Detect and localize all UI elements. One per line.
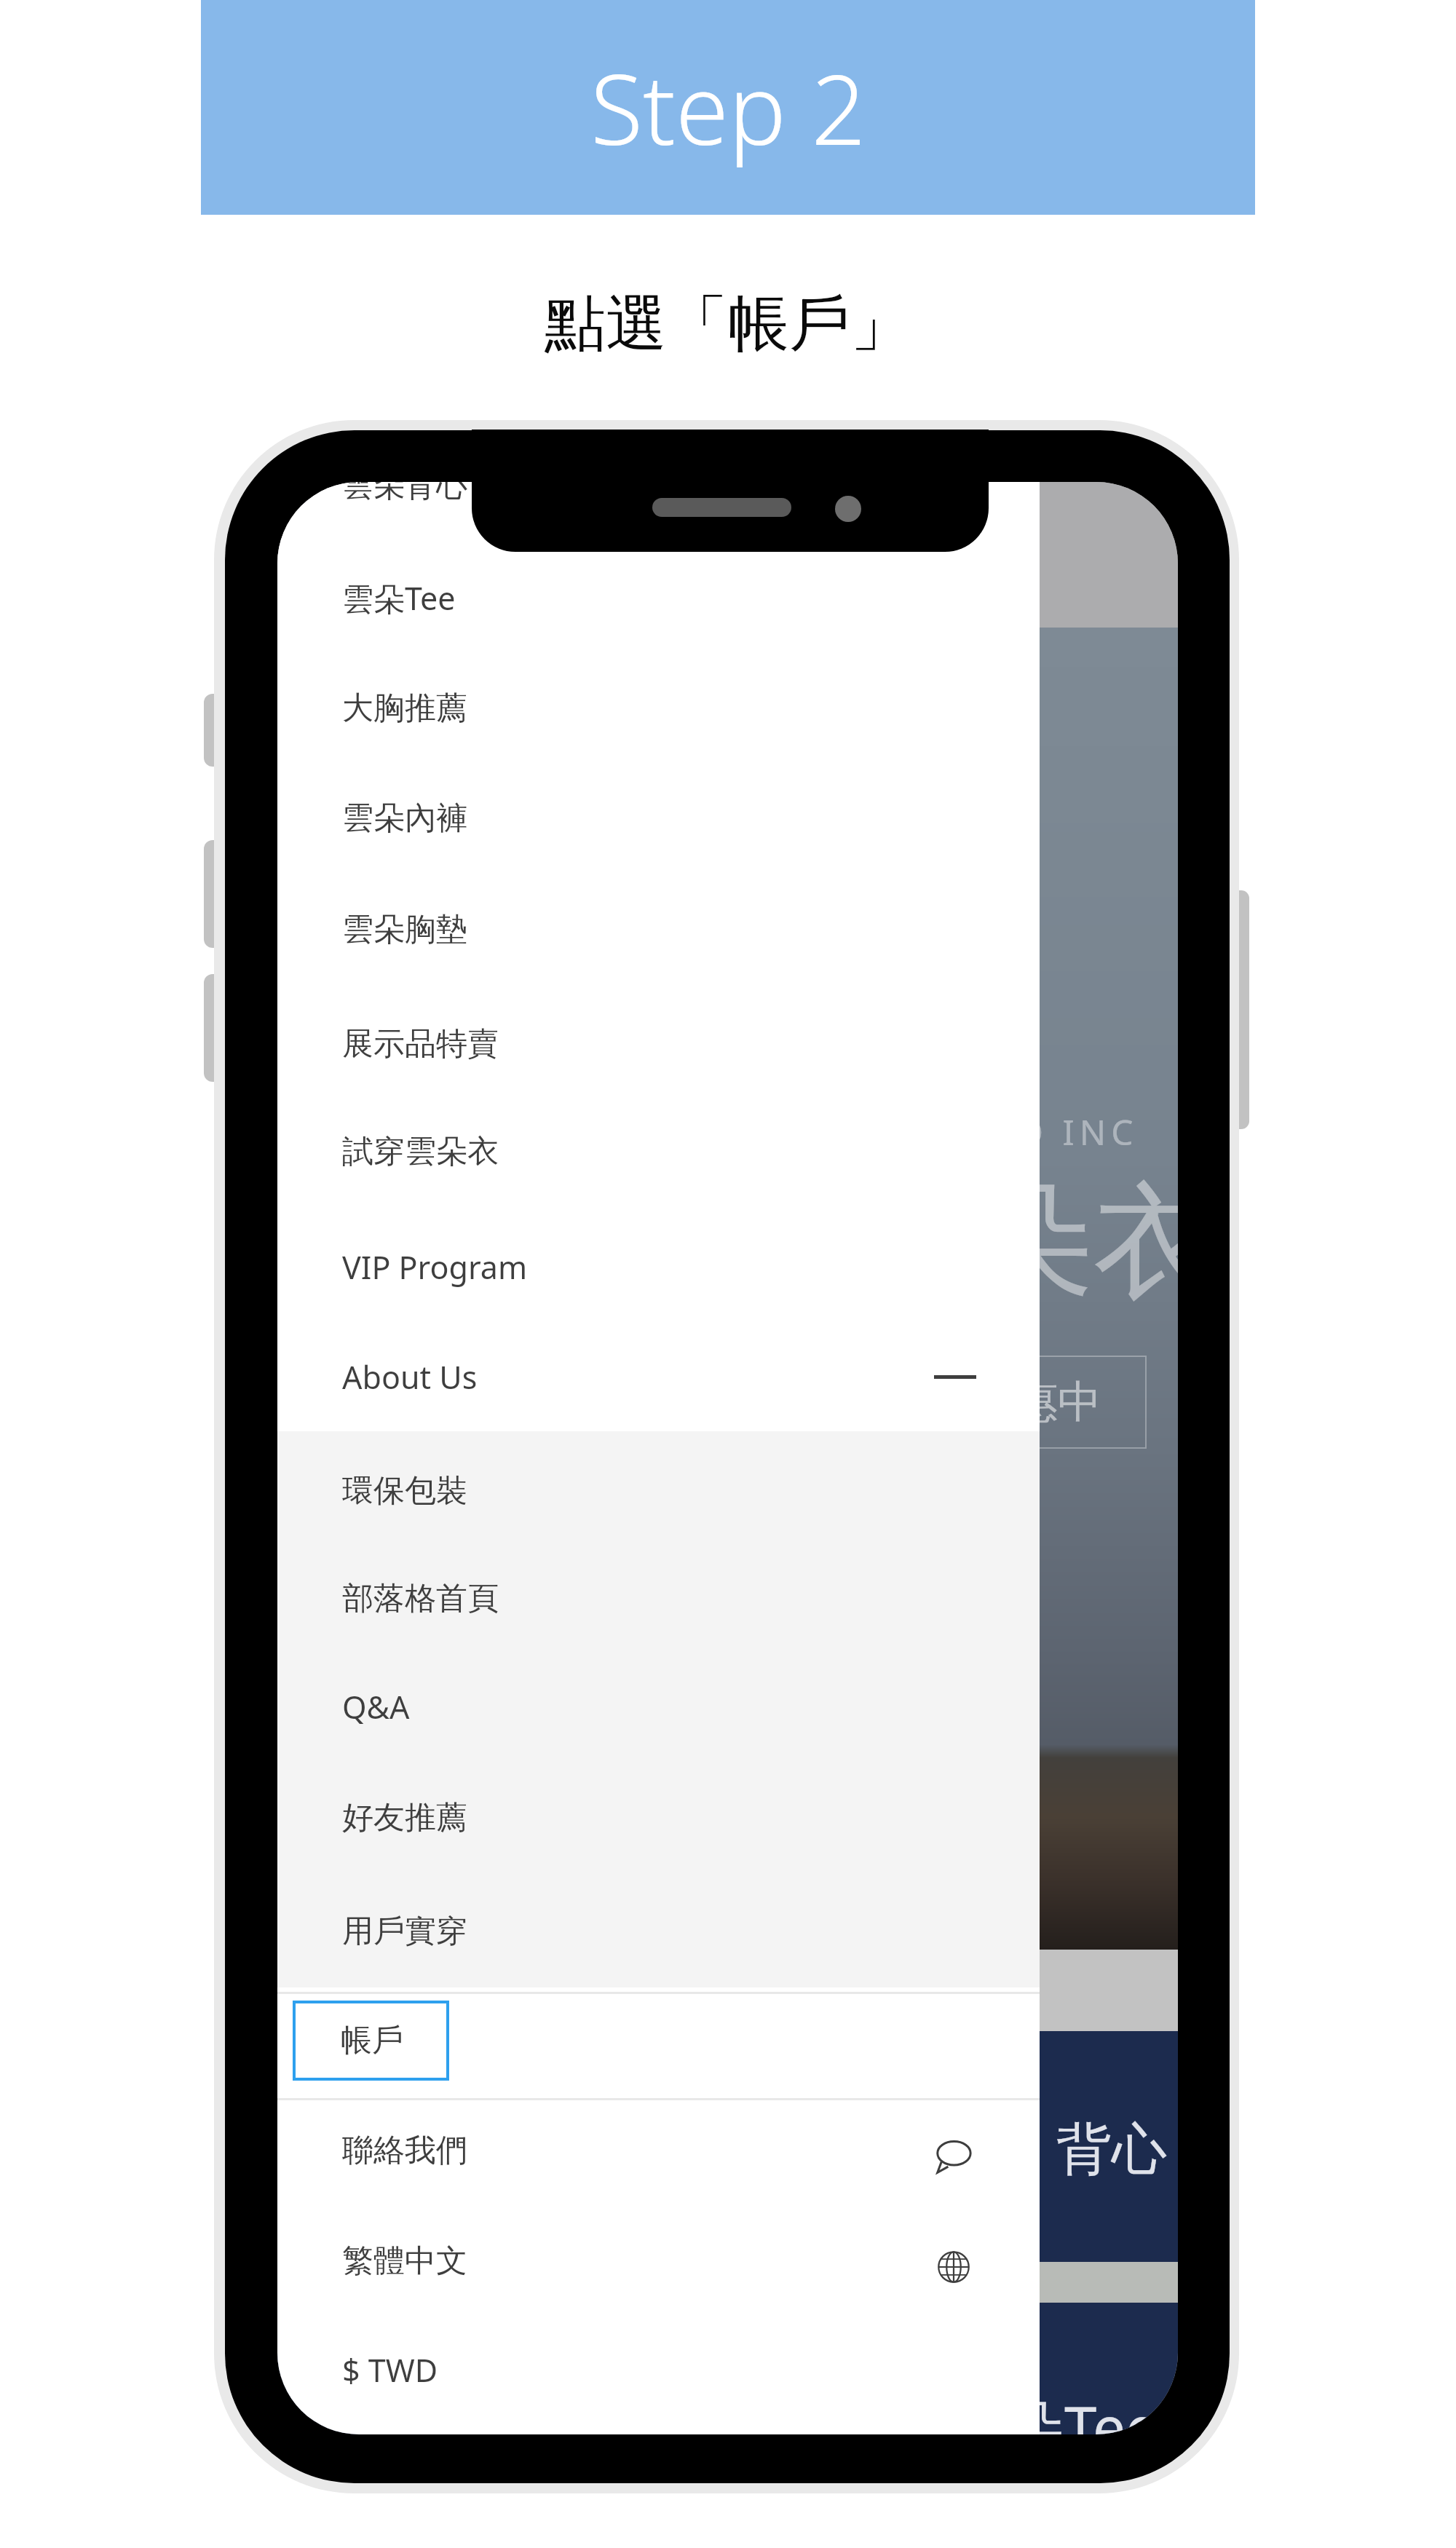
button[interactable]: 環保包裝 bbox=[342, 1464, 1104, 1518]
staticText: 聯絡我們 bbox=[342, 2131, 467, 2170]
button[interactable]: 雲朵背心 bbox=[342, 482, 1104, 513]
button[interactable]: 聯絡我們 bbox=[342, 2124, 1104, 2177]
staticText: 點選「帳戶」 bbox=[545, 285, 911, 363]
staticText: 惠中 bbox=[1014, 1374, 1101, 1430]
button[interactable]: 帳戶 bbox=[293, 2001, 449, 2081]
button[interactable]: 雲朵Tee bbox=[342, 571, 1104, 625]
button[interactable]: 雲朵胸墊 bbox=[342, 903, 1104, 957]
button[interactable]: VIP Program bbox=[342, 1240, 1104, 1294]
staticText: 用戶實穿 bbox=[342, 1912, 467, 1951]
staticText: 部落格首頁 bbox=[342, 1579, 499, 1618]
staticText: 繁體中文 bbox=[342, 2242, 467, 2281]
staticText: 朵Tee bbox=[1006, 2386, 1159, 2434]
staticText: D INC bbox=[1018, 1108, 1139, 1155]
staticText: 環保包裝 bbox=[342, 1471, 467, 1511]
staticText: $ TWD bbox=[342, 2349, 438, 2391]
staticText: VIP Program bbox=[342, 1246, 528, 1289]
staticText: Q&A bbox=[342, 1685, 410, 1728]
button[interactable]: 繁體中文 bbox=[342, 2234, 1104, 2288]
staticText: 好友推薦 bbox=[342, 1798, 467, 1837]
staticText: Step 2 bbox=[590, 42, 866, 173]
button[interactable]: 惠中 bbox=[968, 1356, 1147, 1449]
staticText: About Us bbox=[342, 1356, 478, 1398]
button[interactable]: 試穿雲朵衣 bbox=[342, 1125, 1104, 1179]
staticText: 雲朵內褲 bbox=[342, 799, 467, 838]
staticText: 朵衣 bbox=[968, 1165, 1178, 1323]
staticText: 雲朵胸墊 bbox=[342, 910, 467, 949]
staticText: 背心 bbox=[1056, 2115, 1167, 2185]
button[interactable]: About Us bbox=[342, 1350, 1104, 1404]
button[interactable]: 好友推薦 bbox=[342, 1791, 1104, 1845]
other: Language bbox=[933, 2247, 974, 2287]
button[interactable]: Q&A bbox=[342, 1679, 1104, 1733]
button[interactable]: 展示品特賣 bbox=[342, 1017, 1104, 1071]
other: Contact us bbox=[935, 2136, 974, 2175]
staticText: 大胸推薦 bbox=[342, 689, 467, 728]
button[interactable]: $ TWD bbox=[342, 2343, 1104, 2397]
staticText: 展示品特賣 bbox=[342, 1024, 499, 1064]
button[interactable]: 大胸推薦 bbox=[342, 681, 1104, 735]
button[interactable]: 部落格首頁 bbox=[342, 1572, 1104, 1626]
button[interactable]: 雲朵內褲 bbox=[342, 791, 1104, 845]
staticText: 雲朵Tee bbox=[342, 577, 456, 620]
staticText: 帳戶 bbox=[341, 2021, 403, 2060]
staticText: 試穿雲朵衣 bbox=[342, 1132, 499, 1171]
staticText: 雲朵背心 bbox=[342, 482, 467, 505]
button[interactable]: 用戶實穿 bbox=[342, 1904, 1104, 1958]
